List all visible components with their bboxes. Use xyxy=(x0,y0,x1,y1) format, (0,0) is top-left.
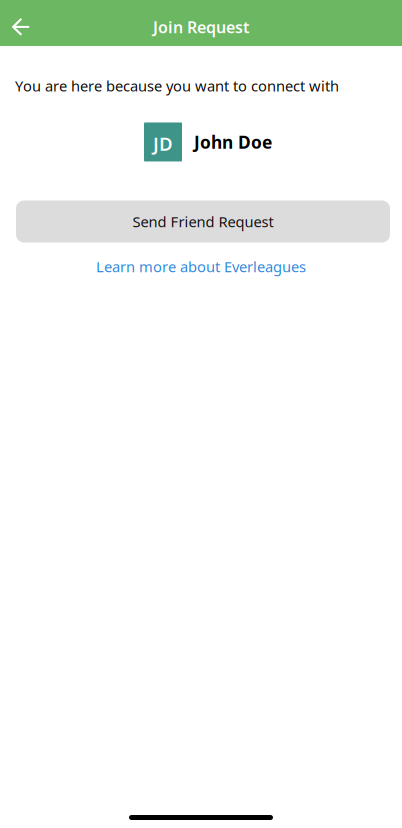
staticText: Learn more about Everleagues xyxy=(96,257,306,276)
staticText: JD xyxy=(153,131,173,156)
staticText: Send Friend Request xyxy=(132,212,273,231)
staticText: John Doe xyxy=(194,130,272,153)
staticText: Join Request xyxy=(153,16,249,38)
button[interactable]: Send Friend Request xyxy=(16,200,390,242)
button[interactable]: Back xyxy=(0,0,41,46)
staticText: You are here because you want to connect… xyxy=(15,76,339,95)
button[interactable]: Learn more about Everleagues xyxy=(0,253,402,279)
